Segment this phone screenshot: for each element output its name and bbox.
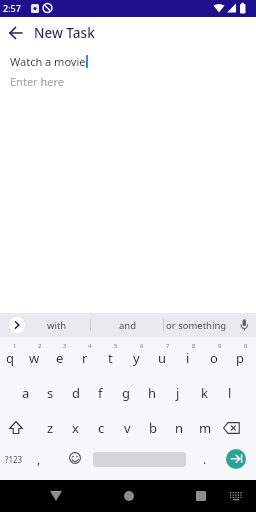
button[interactable]: or something	[163, 313, 229, 337]
staticText: r	[82, 349, 88, 367]
staticText: e	[56, 349, 64, 367]
staticText: q	[6, 349, 14, 367]
staticText: 7	[166, 342, 170, 350]
staticText: j	[176, 384, 180, 402]
staticText: New Task	[34, 24, 95, 42]
staticText: 6	[140, 342, 144, 350]
button[interactable]: g	[113, 375, 139, 410]
staticText: 2:57	[3, 2, 21, 14]
button[interactable]: a	[13, 375, 38, 410]
staticText: 9	[218, 342, 222, 350]
button[interactable]: i	[178, 340, 204, 375]
staticText: w	[29, 349, 40, 367]
button[interactable]: v	[114, 410, 140, 445]
staticText: k	[201, 384, 208, 402]
staticText: 4	[88, 342, 92, 350]
button[interactable]: .	[196, 445, 214, 473]
button[interactable]	[113, 480, 145, 512]
button[interactable]	[9, 410, 38, 445]
staticText: u	[158, 349, 167, 367]
staticText: Enter here	[10, 74, 65, 89]
staticText: 8	[192, 342, 196, 350]
staticText: m	[199, 419, 212, 437]
button[interactable]	[0, 17, 31, 48]
staticText: x	[72, 419, 79, 437]
staticText: o	[210, 349, 218, 367]
button[interactable]	[185, 480, 217, 512]
staticText: l	[228, 384, 232, 402]
button[interactable]: q	[0, 340, 25, 375]
button[interactable]: p	[230, 340, 256, 375]
staticText: 2	[38, 342, 42, 350]
button[interactable]: z	[38, 410, 63, 445]
staticText: v	[124, 419, 131, 437]
button[interactable]: f	[88, 375, 113, 410]
button[interactable]: with	[42, 313, 72, 337]
staticText: ?123	[5, 454, 23, 465]
button[interactable]: l	[217, 375, 243, 410]
staticText: p	[236, 349, 244, 367]
staticText: y	[133, 349, 140, 367]
staticText: Watch a movie	[10, 54, 86, 69]
button[interactable]: w	[25, 340, 50, 375]
button[interactable]: b	[140, 410, 166, 445]
button[interactable]: ,	[30, 445, 48, 473]
button[interactable]: e	[50, 340, 75, 375]
button[interactable]: h	[139, 375, 165, 410]
button[interactable]	[222, 480, 250, 512]
button[interactable]: k	[191, 375, 217, 410]
button[interactable]	[64, 447, 86, 469]
button[interactable]: t	[100, 340, 126, 375]
staticText: z	[47, 419, 54, 437]
staticText: c	[98, 419, 105, 437]
staticText: and	[119, 319, 137, 332]
staticText: a	[22, 384, 30, 402]
staticText: b	[149, 419, 157, 437]
button[interactable]: d	[63, 375, 88, 410]
staticText: g	[122, 384, 130, 402]
button[interactable]: n	[166, 410, 192, 445]
button[interactable]	[226, 449, 246, 469]
staticText: h	[148, 384, 157, 402]
staticText: 1	[13, 342, 17, 350]
button[interactable]: x	[63, 410, 88, 445]
button[interactable]: u	[152, 340, 178, 375]
staticText: i	[186, 349, 190, 367]
staticText: with	[47, 319, 67, 332]
button[interactable]	[9, 317, 25, 333]
staticText: .	[203, 451, 207, 467]
button[interactable]: c	[88, 410, 114, 445]
staticText: s	[47, 384, 54, 402]
button[interactable]: s	[38, 375, 63, 410]
button[interactable]	[40, 480, 72, 512]
staticText: d	[72, 384, 80, 402]
button[interactable]: r	[75, 340, 100, 375]
staticText: 5	[114, 342, 118, 350]
button[interactable]: j	[165, 375, 191, 410]
staticText: f	[98, 384, 103, 402]
staticText: ,	[37, 451, 41, 467]
button[interactable]: and	[113, 313, 143, 337]
staticText: 3	[63, 342, 67, 350]
staticText: t	[108, 349, 113, 367]
button[interactable]: y	[126, 340, 152, 375]
staticText: 0	[244, 342, 248, 350]
button[interactable]	[218, 410, 240, 445]
staticText: or something	[166, 319, 227, 332]
button[interactable]: ?123	[0, 445, 28, 473]
staticText: n	[175, 419, 184, 437]
button[interactable]: o	[204, 340, 230, 375]
button[interactable]: m	[192, 410, 218, 445]
